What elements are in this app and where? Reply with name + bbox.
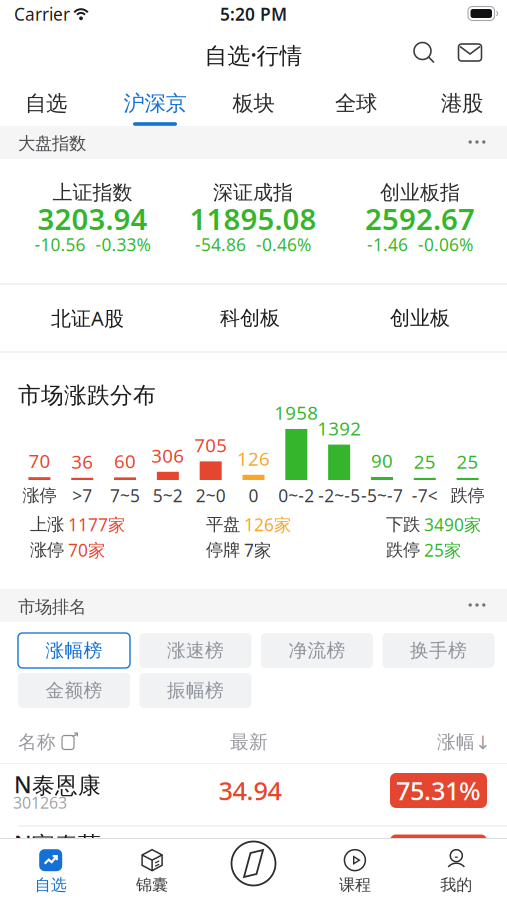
staticText: 我的 — [440, 875, 472, 895]
button[interactable]: 涨速榜 — [139, 633, 251, 668]
staticText: N宣泰药 — [14, 829, 101, 859]
staticText: -7< — [412, 484, 438, 507]
button[interactable]: 深证成指 — [173, 159, 333, 283]
staticText: 1392 — [317, 416, 361, 441]
button[interactable]: 北证A股 — [17, 290, 157, 346]
button[interactable]: 上证指数 — [12, 159, 172, 283]
staticText: 涨速榜 — [167, 639, 224, 662]
staticText: N泰恩康 — [14, 769, 101, 800]
staticText: 126 — [237, 446, 270, 471]
staticText: 沪深京 — [123, 90, 186, 117]
staticText: 25家 — [424, 538, 461, 561]
staticText: 60 — [114, 449, 136, 473]
staticText: 涨幅↓ — [437, 730, 491, 753]
staticText: 停牌 — [206, 539, 240, 561]
button[interactable]: 课程 — [310, 843, 400, 899]
staticText: 创业板指 — [380, 180, 460, 205]
staticText: 锦囊 — [136, 875, 168, 895]
staticText: 港股 — [441, 90, 483, 117]
staticText: 涨停 — [22, 485, 56, 506]
staticText: 34.94 — [218, 774, 281, 807]
button[interactable]: 金额榜 — [18, 673, 130, 708]
button[interactable] — [61, 731, 79, 750]
staticText: 90 — [371, 448, 393, 473]
button[interactable]: N泰恩康 — [0, 764, 507, 825]
staticText: 科创板 — [220, 306, 280, 330]
staticText: 70 — [28, 448, 50, 473]
staticText: 7家 — [244, 538, 271, 561]
staticText: 跌停 — [451, 485, 485, 506]
staticText: 0~-2 — [278, 484, 314, 507]
button[interactable]: 涨幅↓ — [437, 730, 491, 753]
button[interactable]: 港股 — [416, 81, 507, 125]
staticText: -1.46 -0.06% — [367, 233, 473, 256]
staticText: 2~0 — [196, 484, 226, 507]
button[interactable] — [462, 595, 492, 615]
staticText: 25 — [414, 449, 436, 474]
staticText: 2592.67 — [365, 199, 475, 238]
staticText: 金额榜 — [45, 679, 102, 702]
button[interactable]: 板块 — [207, 81, 299, 125]
staticText: 最新 — [230, 730, 268, 753]
staticText: 市场涨跌分布 — [18, 382, 156, 409]
staticText: 25 — [457, 449, 479, 474]
staticText: 自选·行情 — [204, 40, 302, 70]
staticText: 北证A股 — [51, 305, 124, 331]
button[interactable]: 自选 — [0, 81, 92, 125]
staticText: 名称 — [18, 730, 56, 753]
staticText: 全球 — [335, 90, 377, 117]
button[interactable] — [413, 41, 435, 63]
button[interactable]: 振幅榜 — [139, 673, 251, 708]
staticText: -54.86 -0.46% — [195, 233, 311, 256]
staticText: 705 — [194, 433, 227, 457]
staticText: 自选 — [25, 90, 67, 117]
staticText: >7 — [72, 484, 92, 507]
staticText: 板块 — [232, 90, 274, 117]
button[interactable]: N宣泰药 — [0, 827, 507, 850]
button[interactable]: 锦囊 — [107, 843, 197, 899]
staticText: 涨停 — [30, 539, 64, 561]
staticText: Carrier — [14, 2, 70, 25]
staticText: 301263 — [13, 792, 67, 813]
staticText: 7~5 — [110, 484, 140, 507]
staticText: 上证指数 — [52, 180, 132, 205]
staticText: 平盘 — [206, 514, 240, 535]
button[interactable] — [458, 43, 481, 62]
staticText: 课程 — [339, 875, 371, 895]
staticText: 126家 — [244, 513, 291, 536]
button[interactable] — [462, 132, 492, 152]
button[interactable]: 涨幅榜 — [18, 633, 130, 668]
staticText: -2~-5 — [318, 484, 360, 507]
staticText: 深证成指 — [213, 180, 293, 205]
staticText: 306 — [151, 443, 184, 468]
staticText: 5~2 — [153, 484, 183, 507]
staticText: -10.56 -0.33% — [34, 233, 150, 256]
button[interactable]: 创业板指 — [340, 159, 500, 283]
button[interactable]: 科创板 — [180, 290, 320, 346]
staticText: 涨幅榜 — [45, 639, 102, 662]
button[interactable]: 自选 — [6, 843, 96, 899]
button[interactable]: 全球 — [310, 81, 402, 125]
staticText: 自选 — [35, 875, 67, 895]
staticText: 创业板 — [390, 306, 450, 330]
button[interactable] — [208, 835, 298, 891]
staticText: 跌停 — [386, 539, 420, 561]
staticText: 44.21% — [396, 835, 481, 869]
staticText: 3203.94 — [37, 199, 147, 238]
button[interactable]: 净流榜 — [261, 633, 373, 668]
button[interactable]: 换手榜 — [382, 633, 494, 668]
button[interactable]: 沪深京 — [109, 81, 201, 125]
staticText: 1958 — [274, 400, 318, 425]
staticText: 75.31% — [396, 774, 481, 807]
staticText: 换手榜 — [410, 639, 467, 662]
staticText: -5~-7 — [361, 484, 403, 507]
button[interactable]: 创业板 — [350, 290, 490, 346]
staticText: 5:20 PM — [220, 2, 287, 25]
staticText: 净流榜 — [288, 639, 345, 662]
button[interactable]: 我的 — [411, 843, 501, 899]
staticText: 0 — [248, 484, 258, 507]
staticText: 36 — [71, 449, 93, 474]
staticText: 3490家 — [424, 513, 481, 536]
staticText: 振幅榜 — [167, 679, 224, 702]
staticText: 11895.08 — [189, 199, 316, 238]
